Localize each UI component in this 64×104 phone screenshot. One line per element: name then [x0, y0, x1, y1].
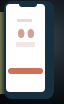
button[interactable]: Continue	[8, 68, 43, 74]
